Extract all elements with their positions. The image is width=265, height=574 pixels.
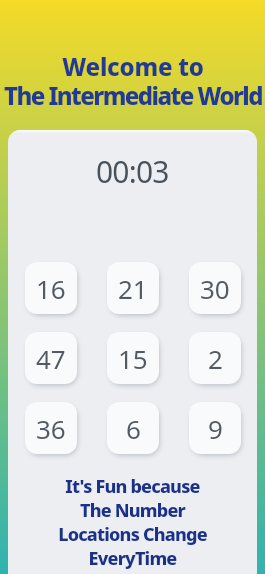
button[interactable]: 16 <box>25 262 77 314</box>
staticText: 47 <box>36 341 66 376</box>
button[interactable]: 47 <box>25 332 77 384</box>
button[interactable]: 21 <box>107 262 159 314</box>
button[interactable]: 6 <box>107 402 159 454</box>
staticText: 16 <box>36 271 66 306</box>
staticText: 30 <box>200 271 230 306</box>
staticText: It's Fun because The Number Locations Ch… <box>8 474 257 570</box>
button[interactable]: 9 <box>189 402 241 454</box>
button[interactable]: 2 <box>189 332 241 384</box>
staticText: 9 <box>208 411 223 446</box>
staticText: 2 <box>208 341 223 376</box>
staticText: 15 <box>118 341 148 376</box>
staticText: 36 <box>36 411 66 446</box>
button[interactable]: 30 <box>189 262 241 314</box>
button[interactable]: 15 <box>107 332 159 384</box>
staticText: 00:03 <box>96 151 169 192</box>
staticText: 21 <box>118 271 148 306</box>
staticText: 6 <box>126 411 141 446</box>
staticText: The Intermediate World <box>4 79 262 112</box>
button[interactable]: 36 <box>25 402 77 454</box>
staticText: Welcome to <box>62 50 204 83</box>
